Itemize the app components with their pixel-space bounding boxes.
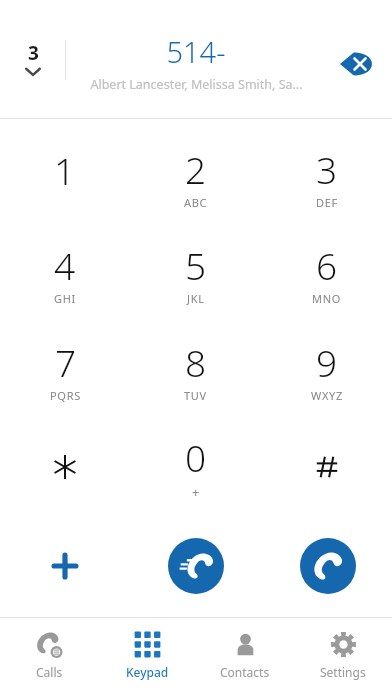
button[interactable]: 8: [130, 321, 261, 418]
staticText: Settings: [320, 664, 366, 680]
button[interactable]: 1: [0, 129, 130, 225]
staticText: +: [192, 483, 201, 501]
staticText: WXYZ: [311, 388, 343, 403]
staticText: Albert Lancester, Melissa Smith, Sa...: [90, 76, 303, 93]
staticText: GHI: [54, 291, 76, 306]
staticText: Calls: [36, 664, 63, 680]
staticText: TUV: [184, 388, 207, 403]
staticText: 3: [28, 40, 39, 66]
button[interactable]: Call: [300, 538, 356, 594]
button[interactable]: Contacts: [196, 618, 294, 696]
staticText: 8: [185, 337, 207, 387]
button[interactable]: Keypad: [98, 618, 196, 696]
button[interactable]: Settings: [294, 618, 392, 696]
button[interactable]: Calls: [0, 618, 98, 696]
button[interactable]: 7: [0, 321, 130, 418]
staticText: 4: [54, 240, 76, 290]
button[interactable]: Add contact: [37, 538, 93, 594]
staticText: Keypad: [126, 664, 169, 680]
button[interactable]: 4: [0, 225, 130, 321]
staticText: 2: [185, 144, 207, 194]
staticText: 9: [316, 337, 338, 387]
staticText: MNO: [312, 291, 342, 306]
staticText: 0: [185, 432, 207, 482]
staticText: 3: [316, 144, 338, 194]
button[interactable]: [0, 418, 130, 515]
staticText: 5: [185, 240, 207, 290]
staticText: PQRS: [50, 388, 81, 403]
button[interactable]: 3: [261, 129, 392, 225]
staticText: 1: [54, 145, 76, 195]
button[interactable]: Delete: [332, 40, 380, 88]
staticText: 514-: [166, 32, 226, 71]
button[interactable]: 2: [130, 129, 261, 225]
button[interactable]: Text call: [168, 538, 224, 594]
button[interactable]: 5: [130, 225, 261, 321]
staticText: Contacts: [220, 664, 270, 680]
button[interactable]: 0: [130, 418, 261, 515]
button[interactable]: 6: [261, 225, 392, 321]
staticText: ABC: [184, 195, 208, 210]
staticText: DEF: [316, 195, 338, 210]
button[interactable]: 9: [261, 321, 392, 418]
staticText: JKL: [187, 291, 205, 306]
button[interactable]: [261, 418, 392, 515]
staticText: 6: [316, 240, 338, 290]
button[interactable]: Select line 3: [16, 38, 50, 79]
staticText: 7: [55, 337, 77, 387]
